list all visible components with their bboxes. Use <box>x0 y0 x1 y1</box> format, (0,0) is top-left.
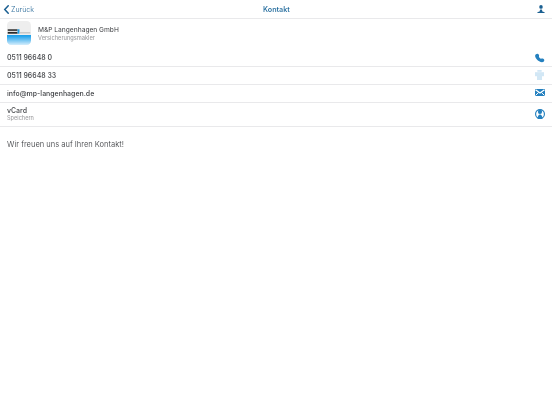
staticText: Speichern <box>7 115 34 122</box>
button[interactable]: Zurück <box>0 0 41 18</box>
button[interactable]: Kontakte <box>530 0 552 18</box>
button[interactable]: Anrufen <box>530 48 552 65</box>
button[interactable]: Fax senden <box>530 66 552 83</box>
staticText: info@mp-langenhagen.de <box>7 89 95 97</box>
staticText: 0511 96648 33 <box>7 71 57 79</box>
button[interactable]: E-Mail senden <box>530 84 552 101</box>
button[interactable]: vCard <box>0 103 552 126</box>
staticText: vCard <box>7 106 27 114</box>
staticText: Versicherungsmakler <box>38 34 95 41</box>
button[interactable]: Kontakt speichern <box>530 102 552 125</box>
button[interactable]: 0511 96648 33 <box>0 67 552 84</box>
staticText: Kontakt <box>263 5 290 14</box>
staticText: Zurück <box>11 5 35 13</box>
staticText: M&P Langenhagen GmbH <box>38 26 119 34</box>
button[interactable]: info@mp-langenhagen.de <box>0 85 552 102</box>
staticText: Wir freuen uns auf Ihren Kontakt! <box>7 140 124 149</box>
staticText: 0511 96648 0 <box>7 53 52 61</box>
button[interactable]: 0511 96648 0 <box>0 49 552 66</box>
